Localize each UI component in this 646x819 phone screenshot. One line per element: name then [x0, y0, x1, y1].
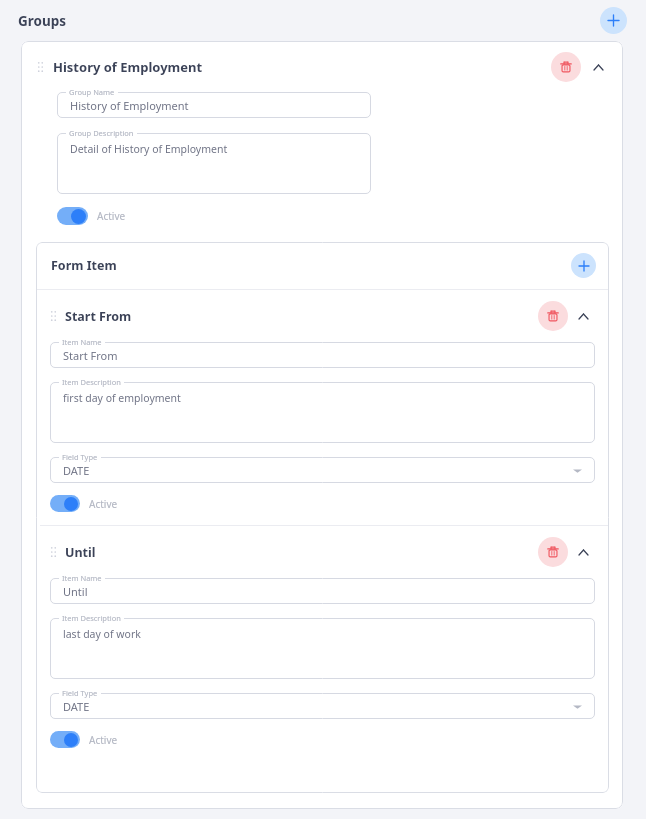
staticText: Item Description — [62, 613, 121, 623]
staticText: Active — [97, 209, 126, 223]
staticText: History of Employment — [53, 58, 203, 76]
staticText: Detail of History of Employment — [70, 142, 228, 156]
staticText: first day of employment — [63, 391, 181, 405]
staticText: Until — [63, 584, 88, 599]
staticText: Start From — [65, 308, 132, 325]
button[interactable]: Delete — [538, 537, 568, 567]
button[interactable]: Delete — [551, 52, 581, 82]
button[interactable]: Active — [50, 495, 118, 512]
button[interactable]: Active — [50, 731, 118, 748]
staticText: Active — [89, 733, 118, 747]
staticText: Until — [65, 544, 96, 561]
button[interactable]: Collapse — [571, 540, 595, 564]
button[interactable]: Delete — [538, 301, 568, 331]
staticText: Start From — [63, 348, 118, 363]
staticText: Group Description — [69, 128, 134, 138]
button[interactable]: Collapse — [571, 304, 595, 328]
staticText: Item Description — [62, 377, 121, 387]
button[interactable]: Active — [57, 207, 126, 225]
staticText: DATE — [63, 699, 90, 714]
button[interactable]: Add — [600, 7, 627, 34]
staticText: History of Employment — [70, 98, 189, 113]
staticText: last day of work — [63, 627, 141, 641]
staticText: Item Name — [62, 337, 102, 347]
staticText: Groups — [18, 12, 67, 30]
staticText: Item Name — [62, 573, 102, 583]
staticText: Active — [89, 497, 118, 511]
staticText: Field Type — [62, 688, 98, 698]
staticText: Group Name — [69, 87, 115, 97]
staticText: DATE — [63, 463, 90, 478]
button[interactable]: Add — [571, 253, 596, 278]
staticText: Form Item — [51, 257, 117, 274]
button[interactable]: Collapse — [586, 55, 610, 79]
staticText: Field Type — [62, 452, 98, 462]
